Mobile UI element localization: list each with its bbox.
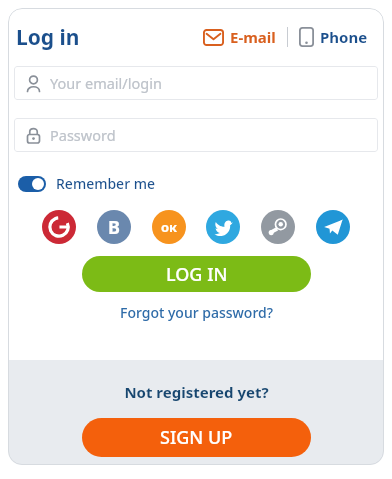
staticText: Password — [50, 125, 116, 145]
button[interactable]: Your email/login — [14, 66, 378, 100]
button[interactable]: Phone — [297, 23, 370, 51]
button[interactable]: LOG IN — [82, 256, 311, 292]
staticText: Not registered yet? — [124, 382, 269, 402]
button[interactable]: SIGN UP — [82, 418, 311, 457]
button[interactable]: Password — [14, 118, 378, 152]
button[interactable]: Sign in with VK — [97, 210, 131, 244]
button[interactable]: Forgot your password? — [114, 301, 279, 324]
button[interactable]: E-mail — [201, 23, 278, 51]
staticText: B — [108, 215, 120, 240]
staticText: LOG IN — [166, 262, 228, 287]
button[interactable]: Remember me — [14, 171, 160, 196]
button[interactable]: Sign in with Google — [42, 210, 76, 244]
button[interactable]: Sign in with Twitter — [206, 210, 240, 244]
staticText: E-mail — [230, 27, 276, 47]
staticText: SIGN UP — [160, 425, 233, 450]
staticText: ок — [161, 218, 178, 236]
button[interactable]: Sign in with Steam — [261, 210, 295, 244]
button[interactable]: Sign in with Odnoklassniki — [152, 210, 186, 244]
staticText: Log in — [16, 23, 80, 52]
staticText: Your email/login — [50, 73, 162, 93]
staticText: Forgot your password? — [120, 303, 273, 322]
staticText: Remember me — [56, 174, 156, 193]
button[interactable]: Sign in with Telegram — [316, 210, 350, 244]
staticText: Phone — [320, 27, 368, 47]
